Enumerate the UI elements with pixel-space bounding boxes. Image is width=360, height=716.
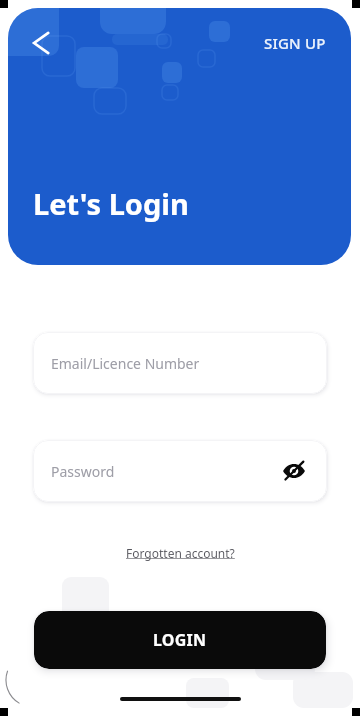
button[interactable]: Back (26, 26, 60, 60)
button[interactable]: SIGN UP (258, 27, 332, 59)
staticText: Email/Licence Number (51, 354, 200, 373)
button[interactable]: Email/Licence Number (33, 332, 327, 394)
button[interactable]: Toggle password visibility (279, 456, 309, 486)
staticText: SIGN UP (264, 33, 326, 53)
staticText: Forgotten account? (126, 545, 235, 561)
staticText: Password (51, 462, 115, 481)
staticText: Let's Login (33, 184, 189, 223)
button[interactable]: Forgotten account? (122, 541, 239, 565)
button[interactable]: Password (33, 440, 327, 502)
staticText: LOGIN (153, 629, 207, 651)
button[interactable]: LOGIN (34, 611, 326, 669)
